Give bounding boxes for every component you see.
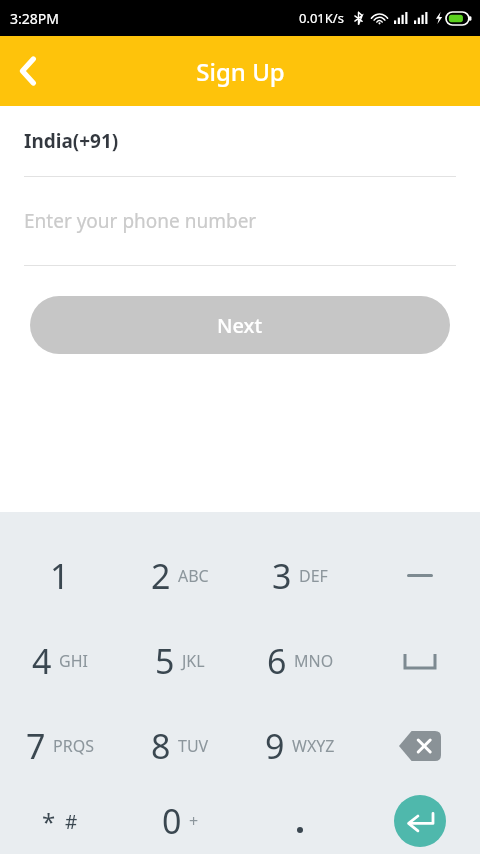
button[interactable]: 3 xyxy=(240,533,360,618)
button[interactable]: * xyxy=(0,788,120,854)
button[interactable]: 4 xyxy=(0,618,120,703)
staticText: Next xyxy=(217,312,263,339)
button[interactable]: 7 xyxy=(0,703,120,788)
staticText: 0.01K/s xyxy=(299,9,344,27)
staticText: DEF xyxy=(299,565,328,587)
staticText: + xyxy=(189,810,199,832)
button[interactable]: Dash xyxy=(360,533,480,618)
button[interactable]: 9 xyxy=(240,703,360,788)
button[interactable]: Back xyxy=(0,43,56,99)
button[interactable]: 2 xyxy=(120,533,240,618)
button[interactable]: 6 xyxy=(240,618,360,703)
staticText: 8 xyxy=(151,723,171,769)
button[interactable]: Enter xyxy=(360,788,480,854)
staticText: 5 xyxy=(155,638,175,684)
staticText: 4 xyxy=(32,638,52,684)
staticText: # xyxy=(65,809,78,835)
staticText: WXYZ xyxy=(292,735,335,757)
staticText: PRQS xyxy=(53,735,94,757)
staticText: 3:28PM xyxy=(10,9,59,28)
button[interactable]: 8 xyxy=(120,703,240,788)
staticText: * xyxy=(42,805,56,838)
staticText: 6 xyxy=(267,638,287,684)
staticText: JKL xyxy=(182,650,205,672)
staticText: 7 xyxy=(26,723,46,769)
button[interactable]: Enter your phone number xyxy=(0,177,480,265)
button[interactable]: Space xyxy=(360,618,480,703)
staticText: TUV xyxy=(178,735,209,757)
button[interactable]: 0 xyxy=(120,788,240,854)
staticText: ABC xyxy=(178,565,209,587)
button[interactable]: Period xyxy=(240,788,360,854)
staticText: Enter your phone number xyxy=(24,208,257,234)
staticText: 3 xyxy=(272,553,292,599)
staticText: Sign Up xyxy=(196,55,285,88)
staticText: GHI xyxy=(59,650,88,672)
button[interactable]: 5 xyxy=(120,618,240,703)
button[interactable]: Next xyxy=(30,296,450,354)
button[interactable]: India(+91) xyxy=(24,128,119,154)
staticText: 2 xyxy=(151,553,171,599)
staticText: 9 xyxy=(265,723,285,769)
staticText: MNO xyxy=(294,650,334,672)
staticText: 1 xyxy=(50,553,70,599)
staticText: 0 xyxy=(162,798,182,844)
button[interactable]: Backspace xyxy=(360,703,480,788)
button[interactable]: 1 xyxy=(0,533,120,618)
